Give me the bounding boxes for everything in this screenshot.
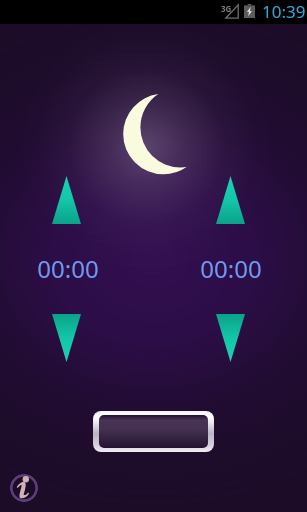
staticText: 00:00 xyxy=(192,252,270,285)
button[interactable] xyxy=(99,415,208,448)
button[interactable]: Info xyxy=(10,474,38,502)
button[interactable]: Increase xyxy=(216,176,245,224)
staticText: 00:00 xyxy=(29,252,107,285)
button[interactable]: Increase xyxy=(52,176,81,224)
staticText: 3G xyxy=(221,3,232,14)
staticText: 10:39 xyxy=(262,0,306,23)
button[interactable]: Decrease xyxy=(216,314,245,362)
button[interactable]: Decrease xyxy=(52,314,81,362)
